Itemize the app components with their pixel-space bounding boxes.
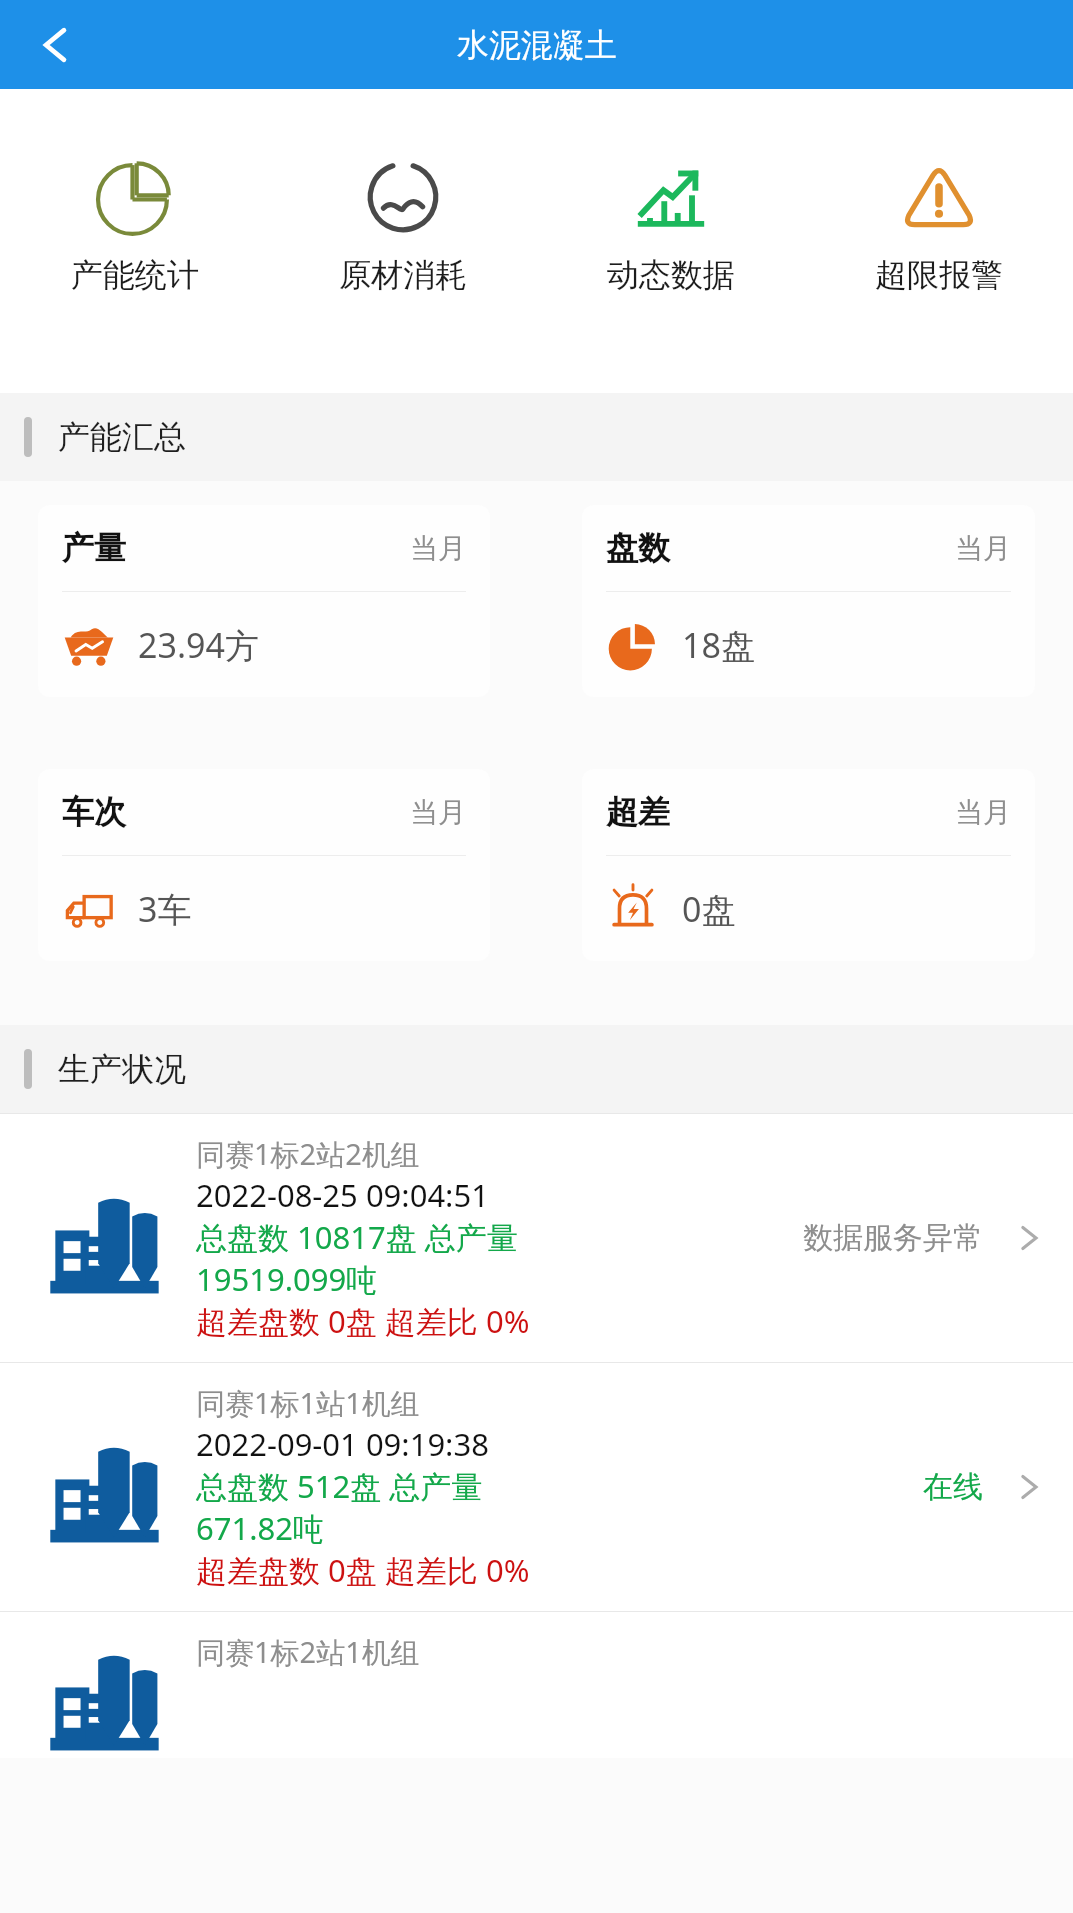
staticText: 当月 [410, 531, 466, 566]
staticText: 超限报警 [875, 255, 1003, 295]
staticText: 动态数据 [607, 255, 735, 295]
staticText: 2022-08-25 09:04:51 [196, 1174, 489, 1216]
staticText: 同赛1标2站2机组 [196, 1134, 420, 1174]
button[interactable]: 超限报警 [805, 89, 1073, 393]
staticText: 车次 [62, 792, 126, 832]
staticText: 产能统计 [71, 255, 199, 295]
button[interactable]: 产量 [38, 505, 490, 697]
button[interactable]: 同赛1标2站2机组 [0, 1114, 1073, 1362]
button[interactable]: Back [20, 14, 82, 76]
button[interactable]: 动态数据 [537, 89, 805, 393]
staticText: 超差盘数 0盘 超差比 0% [196, 1300, 530, 1342]
staticText: 产能汇总 [58, 417, 186, 457]
staticText: 19519.099吨 [196, 1258, 378, 1300]
staticText: 2022-09-01 09:19:38 [196, 1423, 489, 1465]
staticText: 生产状况 [58, 1049, 186, 1089]
staticText: 23.94方 [138, 622, 259, 668]
staticText: 同赛1标1站1机组 [196, 1383, 420, 1423]
staticText: 当月 [955, 531, 1011, 566]
staticText: 当月 [955, 795, 1011, 830]
staticText: 原材消耗 [339, 255, 467, 295]
staticText: 0盘 [682, 886, 736, 932]
button[interactable]: 同赛1标2站1机组 [0, 1612, 1073, 1758]
staticText: 数据服务异常 [803, 1219, 983, 1257]
staticText: 671.82吨 [196, 1507, 324, 1549]
staticText: 总盘数 512盘 总产量 [196, 1465, 483, 1507]
staticText: 超差 [606, 792, 670, 832]
staticText: 当月 [410, 795, 466, 830]
button[interactable]: 盘数 [582, 505, 1035, 697]
staticText: 总盘数 10817盘 总产量 [196, 1216, 518, 1258]
button[interactable]: 产能统计 [0, 89, 269, 393]
staticText: 盘数 [606, 528, 670, 568]
staticText: 水泥混凝土 [457, 25, 617, 65]
staticText: 18盘 [682, 622, 755, 668]
staticText: 同赛1标2站1机组 [196, 1632, 420, 1672]
button[interactable]: 超差 [582, 769, 1035, 961]
staticText: 在线 [923, 1468, 983, 1506]
button[interactable]: 同赛1标1站1机组 [0, 1363, 1073, 1611]
staticText: 超差盘数 0盘 超差比 0% [196, 1549, 530, 1591]
staticText: 3车 [138, 886, 192, 932]
button[interactable]: 车次 [38, 769, 490, 961]
staticText: 产量 [62, 528, 126, 568]
button[interactable]: 原材消耗 [269, 89, 537, 393]
